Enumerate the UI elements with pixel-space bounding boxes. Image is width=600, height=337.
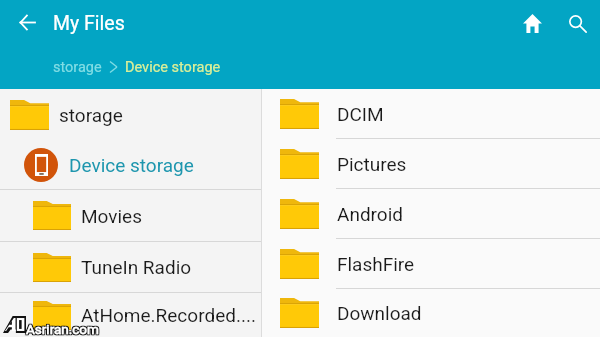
button[interactable]: storage — [51, 56, 104, 78]
staticText: Pictures — [337, 153, 407, 175]
staticText: Asriran.com — [26, 322, 99, 337]
button[interactable]: Device storage — [123, 56, 223, 78]
staticText: AtHome.Recorded.... — [81, 304, 256, 326]
staticText: Device storage — [69, 154, 194, 176]
staticText: Android — [337, 203, 404, 225]
button[interactable]: TuneIn Radio — [0, 242, 261, 292]
button[interactable]: Android — [262, 189, 600, 238]
staticText: DCIM — [337, 103, 384, 125]
button[interactable]: Device storage — [0, 140, 261, 189]
staticText: Asriran.com — [27, 321, 100, 337]
staticText: storage — [53, 59, 102, 76]
staticText: Asriran.com — [26, 320, 99, 336]
button[interactable]: FlashFire — [262, 239, 600, 288]
staticText: Asriran.com — [26, 321, 99, 337]
button[interactable]: Pictures — [262, 139, 600, 188]
staticText: Asriran.com — [25, 322, 98, 337]
staticText: Download — [337, 302, 422, 324]
button[interactable]: Search — [560, 6, 595, 41]
staticText: storage — [59, 104, 123, 126]
button[interactable]: Home — [515, 6, 550, 41]
staticText: Device storage — [125, 59, 221, 76]
button[interactable]: storage — [0, 89, 261, 140]
staticText: Asriran.com — [27, 320, 100, 336]
button[interactable]: Back — [10, 5, 44, 39]
button[interactable]: Download — [262, 289, 600, 337]
staticText: TuneIn Radio — [81, 256, 192, 278]
button[interactable]: DCIM — [262, 89, 600, 138]
staticText: Asriran.com — [25, 321, 98, 337]
staticText: Movies — [81, 205, 142, 227]
staticText: Asriran.com — [27, 322, 100, 337]
staticText: My Files — [53, 12, 125, 35]
staticText: Asriran.com — [25, 320, 98, 336]
button[interactable]: Movies — [0, 190, 261, 241]
staticText: FlashFire — [337, 253, 415, 275]
button[interactable]: AtHome.Recorded.... — [0, 293, 261, 337]
